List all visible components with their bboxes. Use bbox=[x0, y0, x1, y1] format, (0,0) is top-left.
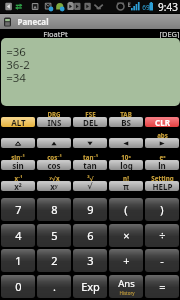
staticText: 2 bbox=[51, 253, 58, 268]
button[interactable]: Down bbox=[73, 138, 107, 148]
button[interactable]: ) bbox=[145, 198, 179, 221]
staticText: n! bbox=[123, 174, 129, 181]
staticText: Ans bbox=[118, 277, 135, 290]
staticText: BS bbox=[121, 117, 131, 127]
staticText: TAB bbox=[120, 110, 132, 117]
staticText: =34 bbox=[6, 70, 26, 83]
button[interactable]: × bbox=[109, 224, 143, 247]
button[interactable]: √ bbox=[73, 181, 107, 191]
staticText: FloatPt bbox=[43, 29, 68, 38]
button[interactable]: + bbox=[109, 249, 143, 272]
staticText: 1 bbox=[15, 253, 22, 268]
button[interactable]: INS bbox=[37, 117, 71, 127]
staticText: 10ˣ bbox=[121, 153, 131, 160]
staticText: 6 bbox=[87, 228, 94, 243]
staticText: x⁻¹ bbox=[14, 174, 23, 181]
staticText: 4 bbox=[15, 228, 22, 243]
staticText: √ bbox=[87, 182, 93, 191]
staticText: 8 bbox=[51, 202, 58, 217]
button[interactable]: 2 bbox=[37, 249, 71, 272]
staticText: ALT bbox=[11, 117, 26, 127]
staticText: cos bbox=[47, 160, 61, 170]
staticText: 36-2 bbox=[6, 57, 30, 70]
button[interactable]: Left bbox=[109, 138, 143, 148]
staticText: x² bbox=[14, 181, 22, 191]
button[interactable]: x² bbox=[1, 181, 35, 191]
staticText: DEL bbox=[83, 117, 98, 127]
button[interactable]: π bbox=[109, 181, 143, 191]
button[interactable]: CLR bbox=[145, 117, 179, 127]
button[interactable]: = bbox=[145, 275, 179, 298]
staticText: 69 bbox=[142, 3, 150, 12]
staticText: [DEG] bbox=[159, 29, 180, 38]
button[interactable]: ( bbox=[109, 198, 143, 221]
staticText: 3 bbox=[87, 253, 94, 268]
button[interactable]: Right bbox=[145, 138, 179, 148]
button[interactable]: BS bbox=[109, 117, 143, 127]
button[interactable]: 7 bbox=[1, 198, 35, 221]
button[interactable]: DEL bbox=[73, 117, 107, 127]
staticText: . bbox=[53, 279, 56, 294]
button[interactable]: ÷ bbox=[145, 224, 179, 247]
button[interactable]: Panecal app bar bbox=[0, 14, 180, 29]
button[interactable]: ln bbox=[145, 160, 179, 170]
button[interactable]: 6 bbox=[73, 224, 107, 247]
staticText: tan bbox=[83, 160, 97, 170]
button[interactable]: xʸ bbox=[37, 181, 71, 191]
staticText: 7 bbox=[15, 202, 22, 217]
staticText: FSE bbox=[85, 110, 96, 117]
button[interactable]: Up bbox=[37, 138, 71, 148]
staticText: cos⁻¹ bbox=[47, 153, 62, 160]
button[interactable]: . bbox=[37, 275, 71, 298]
button[interactable]: 8 bbox=[37, 198, 71, 221]
staticText: Exp bbox=[81, 279, 100, 294]
staticText: 9 bbox=[87, 202, 94, 217]
button[interactable]: HELP bbox=[145, 181, 179, 191]
staticText: 9:43 bbox=[158, 0, 178, 13]
staticText: sin bbox=[12, 160, 24, 170]
staticText: 0 bbox=[15, 279, 22, 294]
staticText: Setting bbox=[151, 174, 174, 181]
button[interactable]: 9 bbox=[73, 198, 107, 221]
staticText: ÷ bbox=[159, 228, 166, 243]
staticText: π bbox=[123, 181, 129, 191]
staticText: log bbox=[120, 160, 133, 170]
button[interactable]: 1 bbox=[1, 249, 35, 272]
staticText: History bbox=[119, 290, 135, 296]
staticText: CLR bbox=[155, 117, 170, 127]
button[interactable]: - bbox=[145, 249, 179, 272]
staticText: 5 bbox=[51, 228, 58, 243]
staticText: HELP bbox=[152, 181, 173, 191]
button[interactable]: Up outline bbox=[1, 138, 35, 148]
button[interactable]: tan bbox=[73, 160, 107, 170]
button[interactable]: 4 bbox=[1, 224, 35, 247]
button[interactable]: sin bbox=[1, 160, 35, 170]
staticText: DRG bbox=[47, 110, 61, 117]
button[interactable]: 3 bbox=[73, 249, 107, 272]
button[interactable]: 0 bbox=[1, 275, 35, 298]
staticText: ³√ bbox=[87, 174, 94, 181]
staticText: + bbox=[123, 253, 130, 268]
staticText: xʸ bbox=[50, 181, 58, 191]
staticText: ln bbox=[158, 160, 166, 170]
button[interactable]: cos bbox=[37, 160, 71, 170]
staticText: ʸ√x bbox=[49, 174, 60, 181]
staticText: × bbox=[123, 228, 130, 243]
staticText: ) bbox=[160, 202, 164, 217]
button[interactable]: =36 bbox=[1, 38, 180, 106]
staticText: eˣ bbox=[159, 153, 166, 160]
staticText: =36 bbox=[6, 44, 26, 57]
button[interactable]: Ans bbox=[109, 275, 143, 298]
staticText: tan⁻¹ bbox=[83, 153, 98, 160]
button[interactable]: log bbox=[109, 160, 143, 170]
button[interactable]: ALT bbox=[1, 117, 35, 127]
staticText: ( bbox=[124, 202, 128, 217]
button[interactable]: Exp bbox=[73, 275, 107, 298]
staticText: sin⁻¹ bbox=[11, 153, 25, 160]
staticText: = bbox=[159, 279, 166, 294]
staticText: abs bbox=[157, 131, 168, 138]
button[interactable]: 5 bbox=[37, 224, 71, 247]
staticText: INS bbox=[47, 117, 62, 127]
staticText: - bbox=[160, 253, 164, 268]
staticText: Panecal bbox=[17, 16, 49, 27]
